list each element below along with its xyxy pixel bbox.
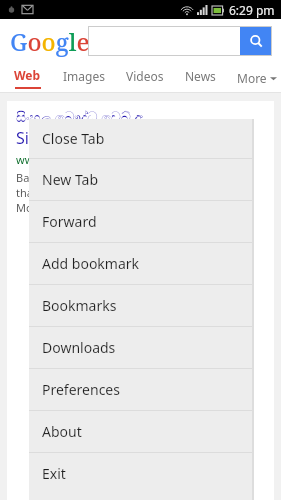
button[interactable]: New Tab [29,159,252,200]
staticText: සිංහල බෞද්ධ වෙබ් අ [16,107,144,126]
button[interactable]: Search [240,26,272,56]
staticText: Preferences [42,380,120,399]
staticText: tha [16,185,33,200]
button[interactable]: About [29,411,252,452]
staticText: 6:29 pm [229,2,275,18]
staticText: Downloads [42,338,116,357]
staticText: New Tab [42,170,99,189]
button[interactable]: Videos [126,68,164,88]
staticText: Exit [42,464,66,483]
staticText: Videos [126,68,164,84]
button[interactable]: Forward [29,201,252,242]
button[interactable]: Preferences [29,369,252,410]
staticText: Forward [42,212,97,231]
staticText: Bookmarks [42,296,117,315]
staticText: Mo [16,200,33,215]
staticText: Add bookmark [42,254,140,273]
staticText: Images [63,68,105,84]
button[interactable]: Exit [29,453,252,494]
staticText: Ba [16,170,30,185]
button[interactable]: Web [14,67,41,89]
staticText: Si [16,127,29,149]
button[interactable]: Search [88,26,272,56]
button[interactable]: Add bookmark [29,243,252,284]
staticText: Web [14,67,41,83]
button[interactable]: Images [63,68,105,88]
button[interactable]: Bookmarks [29,285,252,326]
staticText: www.example.com [16,152,114,167]
staticText: More [237,70,267,86]
button[interactable]: News [185,68,216,88]
staticText: News [185,68,216,84]
staticText: Close Tab [42,129,105,148]
staticText: Google [10,25,90,58]
button[interactable]: Close Tab [29,119,252,158]
button[interactable]: More [237,70,277,86]
button[interactable]: Downloads [29,327,252,368]
staticText: About [42,422,82,441]
